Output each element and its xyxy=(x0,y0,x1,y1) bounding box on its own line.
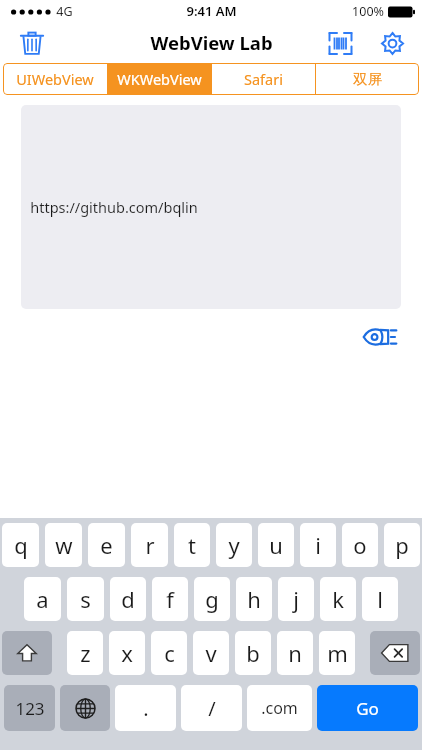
button[interactable]: h xyxy=(236,577,272,621)
staticText: i xyxy=(315,530,321,560)
button[interactable]: UIWebView xyxy=(3,63,107,95)
button[interactable]: w xyxy=(45,523,82,567)
staticText: f xyxy=(166,584,174,614)
button[interactable]: b xyxy=(235,631,271,675)
staticText: c xyxy=(164,638,175,668)
button[interactable]: . xyxy=(115,685,176,731)
button[interactable]: x xyxy=(109,631,145,675)
staticText: . xyxy=(143,695,149,722)
staticText: a xyxy=(36,584,49,614)
button[interactable]: z xyxy=(67,631,103,675)
button[interactable]: Delete xyxy=(14,25,50,61)
staticText: d xyxy=(121,584,135,614)
staticText: WebView Lab xyxy=(150,30,273,55)
button[interactable]: c xyxy=(151,631,187,675)
staticText: q xyxy=(14,530,28,560)
button[interactable]: k xyxy=(320,577,356,621)
button[interactable]: q xyxy=(2,523,39,567)
staticText: 4G xyxy=(56,3,73,20)
button[interactable]: s xyxy=(67,577,104,621)
staticText: b xyxy=(246,638,260,668)
staticText: z xyxy=(80,638,91,668)
staticText: y xyxy=(228,530,240,560)
button[interactable]: e xyxy=(88,523,125,567)
button[interactable]: j xyxy=(278,577,314,621)
button[interactable]: Change keyboard xyxy=(60,685,110,731)
button[interactable]: t xyxy=(174,523,210,567)
button[interactable]: i xyxy=(300,523,336,567)
staticText: s xyxy=(80,584,91,614)
staticText: / xyxy=(208,695,216,722)
button[interactable]: n xyxy=(277,631,313,675)
button[interactable]: Go xyxy=(317,685,418,731)
staticText: .com xyxy=(261,697,298,719)
staticText: p xyxy=(395,530,409,560)
button[interactable]: p xyxy=(384,523,420,567)
staticText: g xyxy=(205,584,219,614)
button[interactable]: Settings xyxy=(374,25,410,61)
button[interactable]: 123 xyxy=(4,685,55,731)
button[interactable]: a xyxy=(24,577,61,621)
staticText: 123 xyxy=(15,697,45,720)
staticText: https://github.com/bqlin xyxy=(30,197,198,217)
button[interactable]: Inspect xyxy=(360,317,400,357)
button[interactable]: g xyxy=(194,577,230,621)
button[interactable]: u xyxy=(258,523,294,567)
staticText: m xyxy=(327,638,348,668)
staticText: l xyxy=(377,584,383,614)
button[interactable]: Shift xyxy=(2,631,52,675)
button[interactable]: / xyxy=(181,685,242,731)
staticText: v xyxy=(205,638,217,668)
button[interactable]: WKWebView xyxy=(108,63,211,95)
button[interactable]: f xyxy=(152,577,188,621)
button[interactable]: d xyxy=(110,577,146,621)
staticText: j xyxy=(293,584,299,614)
staticText: Go xyxy=(356,697,379,720)
staticText: 100% xyxy=(352,3,384,20)
button[interactable]: Safari xyxy=(212,63,315,95)
button[interactable]: y xyxy=(216,523,252,567)
button[interactable]: Backspace xyxy=(370,631,420,675)
staticText: t xyxy=(188,530,196,560)
staticText: r xyxy=(145,530,155,560)
staticText: w xyxy=(55,530,73,560)
button[interactable]: Scan barcode xyxy=(322,25,358,61)
button[interactable]: r xyxy=(131,523,168,567)
staticText: Safari xyxy=(244,69,283,89)
staticText: o xyxy=(353,530,367,560)
button[interactable]: m xyxy=(319,631,355,675)
button[interactable]: v xyxy=(193,631,229,675)
button[interactable]: 双屏 xyxy=(316,63,419,95)
staticText: 双屏 xyxy=(353,70,382,88)
staticText: 9:41 AM xyxy=(186,2,237,20)
button[interactable]: https://github.com/bqlin xyxy=(21,105,401,309)
staticText: e xyxy=(100,530,113,560)
staticText: WKWebView xyxy=(117,69,202,89)
staticText: x xyxy=(121,638,133,668)
button[interactable]: o xyxy=(342,523,378,567)
button[interactable]: l xyxy=(362,577,398,621)
staticText: h xyxy=(247,584,261,614)
button[interactable]: .com xyxy=(247,685,312,731)
staticText: UIWebView xyxy=(16,69,94,89)
staticText: u xyxy=(269,530,283,560)
staticText: n xyxy=(288,638,302,668)
staticText: k xyxy=(332,584,344,614)
